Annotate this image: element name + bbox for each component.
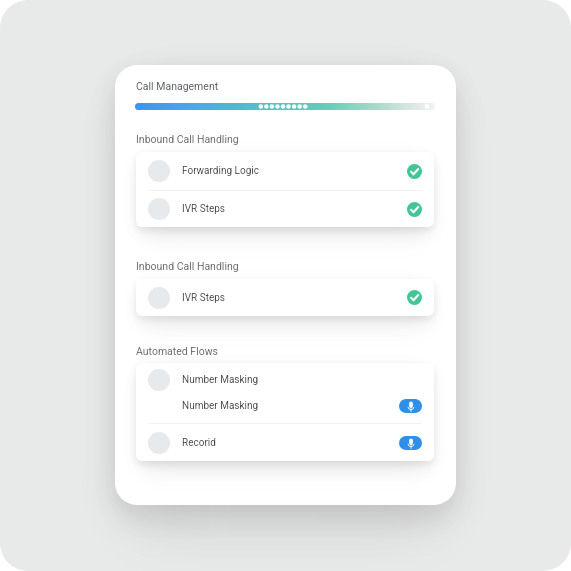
button[interactable]: Completed [407, 290, 422, 305]
staticText: Number Masking [182, 374, 259, 386]
button[interactable]: Forwarding Logic [136, 152, 434, 190]
button[interactable]: Number Masking [136, 363, 434, 396]
staticText: Inbound Call Handling [136, 133, 239, 145]
staticText: IVR Steps [182, 292, 226, 304]
button[interactable]: Completed [407, 164, 422, 179]
button[interactable]: IVR Steps [136, 191, 434, 227]
button[interactable]: IVR Steps [136, 279, 434, 316]
button[interactable]: Completed [407, 202, 422, 217]
button[interactable]: Record audio [399, 399, 422, 413]
button[interactable]: Record audio [399, 436, 422, 450]
staticText: Inbound Call Handling [136, 260, 239, 272]
staticText: Forwarding Logic [182, 165, 259, 177]
staticText: Recorid [182, 437, 216, 449]
button[interactable]: Number Masking [136, 396, 434, 415]
staticText: Number Masking [182, 400, 259, 412]
button[interactable]: Recorid [136, 424, 434, 461]
staticText: Call Management [136, 80, 219, 92]
staticText: Automated Flows [136, 345, 219, 357]
staticText: IVR Steps [182, 203, 226, 215]
